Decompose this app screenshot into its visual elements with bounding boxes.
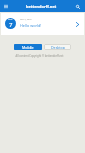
staticText: Hello world! xyxy=(20,23,42,28)
button[interactable]: Open post xyxy=(74,21,81,28)
staticText: 7 xyxy=(9,21,13,29)
staticText: Mobile xyxy=(22,45,34,50)
staticText: All content Copyright © bettendorff.net xyxy=(0,54,82,58)
button[interactable]: Mobile xyxy=(14,44,42,50)
staticText: MAY 7, 2019 xyxy=(20,18,32,21)
button[interactable]: Menu xyxy=(1,2,10,11)
staticText: Desktop xyxy=(51,45,65,50)
staticText: MAY xyxy=(8,18,13,21)
staticText: bettendorff.net xyxy=(26,4,57,9)
button[interactable]: Search xyxy=(73,2,82,11)
button[interactable]: MAY xyxy=(1,13,84,35)
button[interactable]: Desktop xyxy=(44,44,71,50)
